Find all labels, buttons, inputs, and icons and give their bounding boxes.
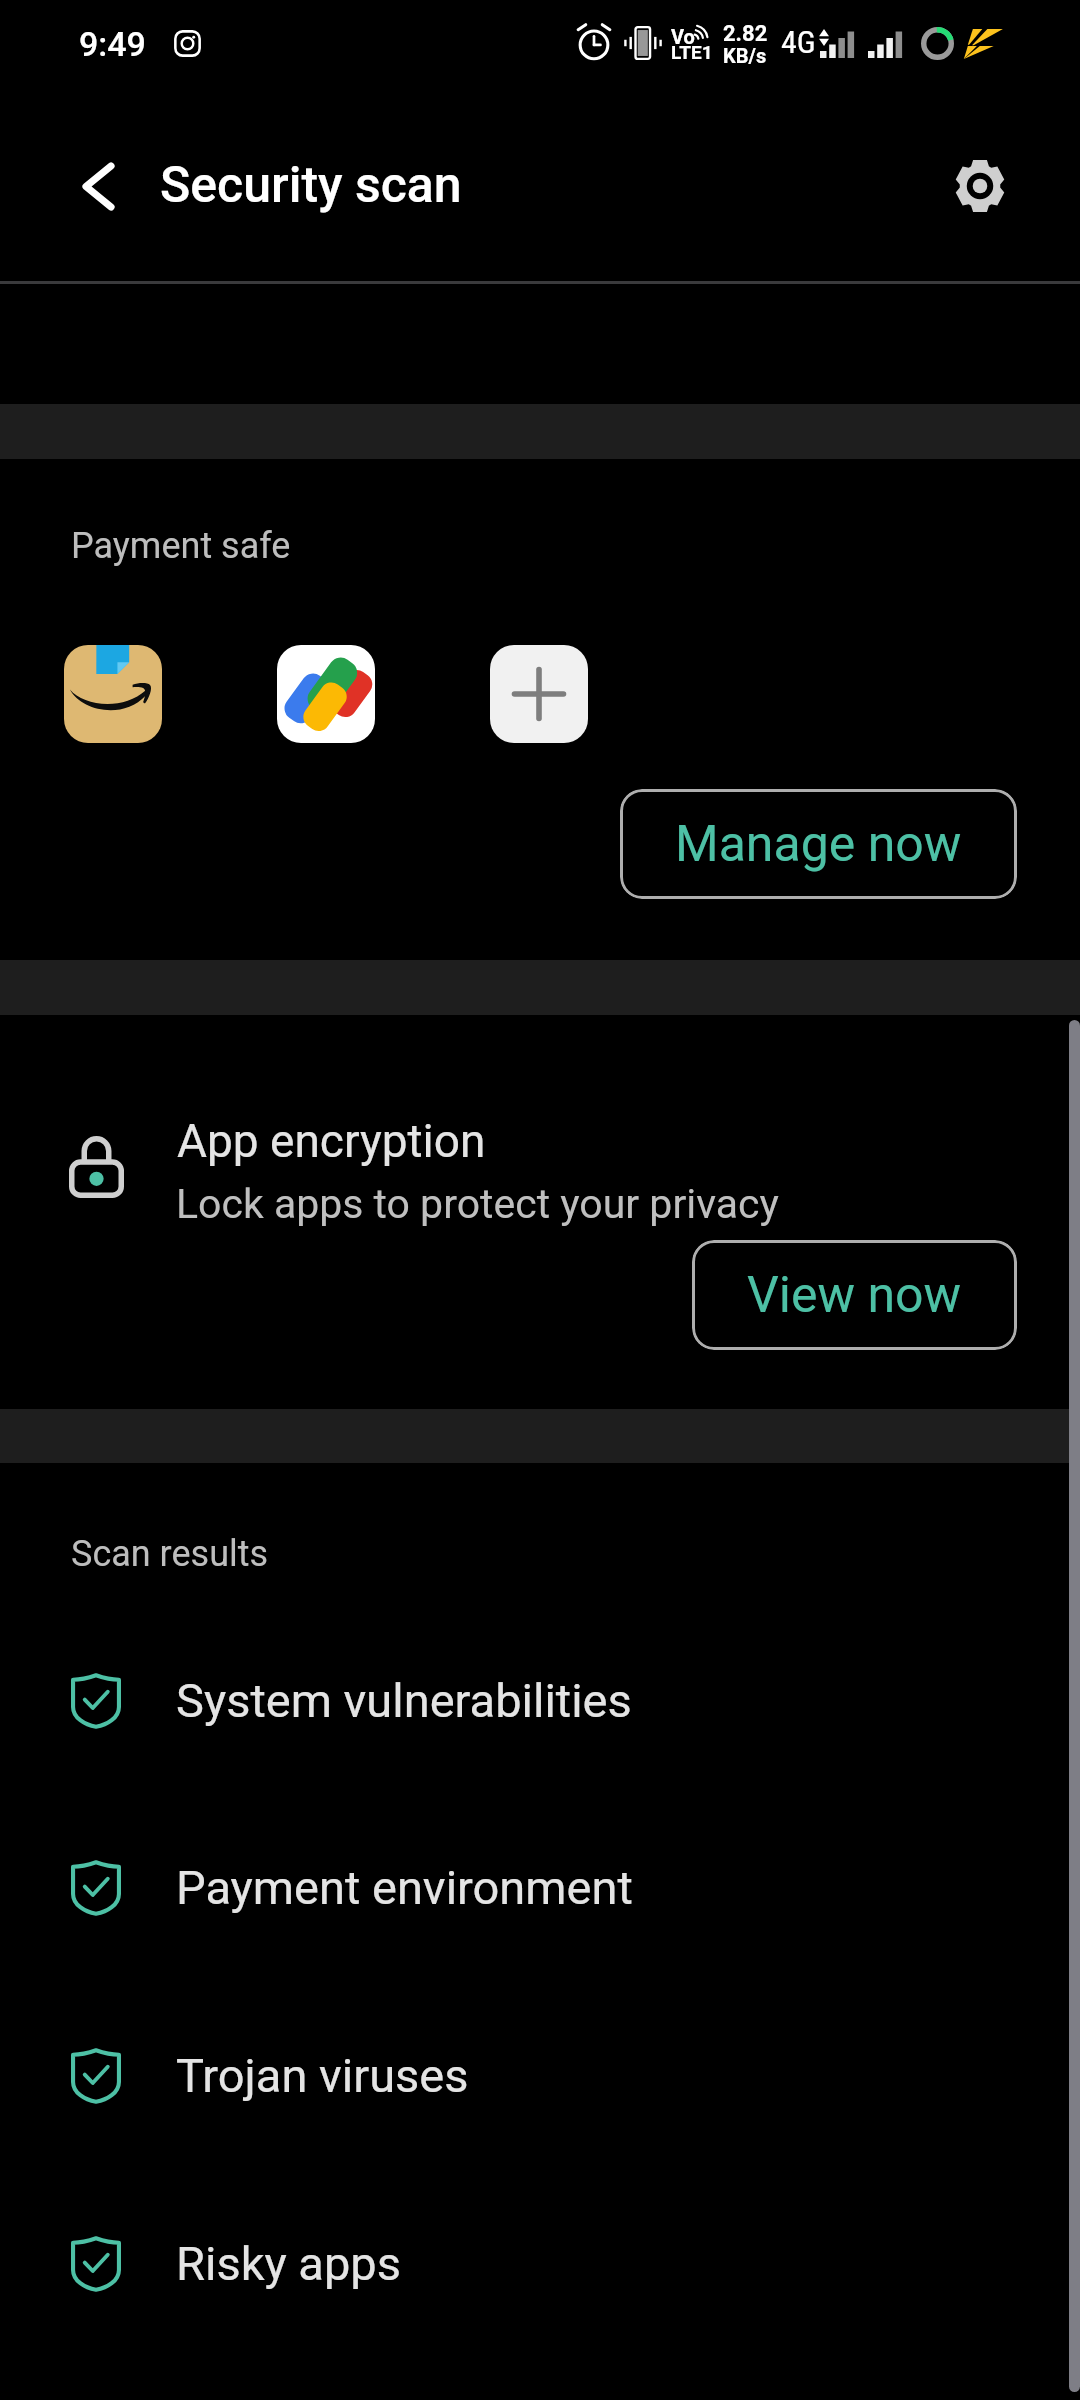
staticText: App encryption xyxy=(177,1114,486,1168)
button[interactable]: Risky apps xyxy=(0,2171,1080,2358)
staticText: 4G xyxy=(781,23,816,61)
staticText: Vo xyxy=(671,25,695,48)
staticText: System vulnerabilities xyxy=(176,1673,632,1728)
button[interactable]: Back xyxy=(52,140,144,232)
staticText: Security scan xyxy=(160,156,462,215)
button[interactable]: Add app xyxy=(490,645,588,743)
staticText: Scan results xyxy=(71,1533,269,1575)
button[interactable]: System vulnerabilities xyxy=(0,1608,1080,1795)
staticText: 2.82 xyxy=(723,21,768,47)
button[interactable]: Payment environment xyxy=(0,1795,1080,1982)
staticText: 9:49 xyxy=(79,24,146,64)
staticText: Payment environment xyxy=(176,1860,633,1915)
button[interactable]: Manage now xyxy=(620,789,1017,899)
staticText: View now xyxy=(747,1266,962,1325)
staticText: Payment safe xyxy=(71,525,291,567)
button[interactable]: Trojan viruses xyxy=(0,1983,1080,2170)
staticText: Risky apps xyxy=(176,2236,401,2291)
button[interactable]: Google Pay xyxy=(277,645,375,743)
staticText: Lock apps to protect your privacy xyxy=(176,1180,779,1228)
button[interactable]: Amazon xyxy=(64,645,162,743)
staticText: Manage now xyxy=(675,815,962,874)
button[interactable]: View now xyxy=(692,1240,1017,1350)
staticText: KB/s xyxy=(723,44,767,67)
staticText: LTE1 xyxy=(671,41,713,63)
staticText: Trojan viruses xyxy=(176,2048,469,2103)
button[interactable]: Settings xyxy=(934,140,1026,232)
